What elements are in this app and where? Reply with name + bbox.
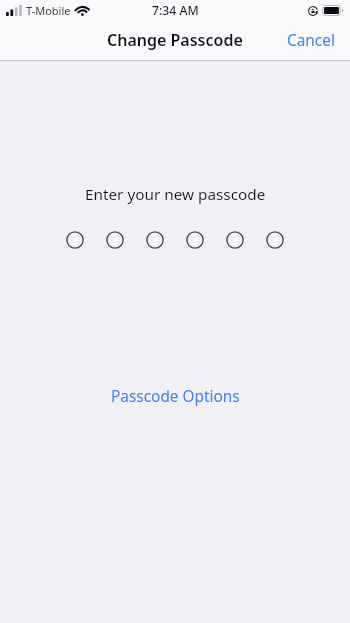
staticText: 7:34 AM <box>152 2 199 19</box>
other: Cellular signal strength <box>6 5 22 16</box>
other: Portrait orientation lock <box>308 6 318 16</box>
staticText: Cancel <box>287 30 335 48</box>
button[interactable]: Passcode Options <box>101 381 250 412</box>
staticText: T-Mobile <box>26 3 71 18</box>
other: Wi-Fi connected <box>76 5 89 16</box>
staticText: Enter your new passcode <box>85 184 266 205</box>
other: Battery full <box>322 5 344 16</box>
button[interactable]: Passcode entry, 6 digits <box>66 231 284 249</box>
staticText: Passcode Options <box>111 386 240 407</box>
staticText: Change Passcode <box>107 29 243 51</box>
button[interactable]: Cancel <box>272 19 350 59</box>
